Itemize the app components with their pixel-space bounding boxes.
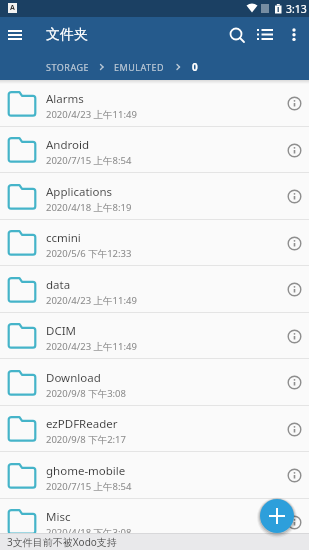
button[interactable]	[287, 422, 302, 437]
staticText: Applications	[46, 184, 113, 200]
button[interactable]: ghome-mobile	[0, 452, 309, 499]
staticText: 2020/4/18 下午3:08	[46, 526, 132, 539]
button[interactable]: Misc	[0, 499, 309, 545]
staticText: 3文件目前不被Xodo支持	[7, 535, 117, 549]
button[interactable]	[287, 468, 302, 483]
button[interactable]	[287, 189, 302, 204]
staticText: 2020/4/23 上午11:49	[46, 340, 137, 353]
staticText: Android	[46, 137, 90, 153]
staticText: DCIM	[46, 323, 76, 339]
button[interactable]	[224, 22, 250, 48]
staticText: ghome-mobile	[46, 463, 126, 479]
button[interactable]	[287, 329, 302, 344]
button[interactable]	[282, 23, 306, 47]
button[interactable]	[252, 22, 278, 48]
staticText: 2020/4/23 上午11:49	[46, 294, 137, 307]
staticText: Alarms	[46, 91, 84, 107]
button[interactable]: 0	[192, 60, 198, 74]
button[interactable]	[287, 236, 302, 251]
button[interactable]: EMULATED	[114, 61, 165, 73]
staticText: data	[46, 277, 71, 293]
staticText: 文件夹	[46, 26, 88, 44]
staticText: 2020/4/23 上午11:49	[46, 108, 137, 121]
button[interactable]	[287, 143, 302, 158]
button[interactable]	[287, 375, 302, 390]
staticText: ccmini	[46, 230, 81, 246]
button[interactable]	[287, 96, 302, 111]
button[interactable]: ezPDFReader	[0, 406, 309, 452]
button[interactable]	[260, 499, 294, 533]
staticText: 2020/7/15 上午8:54	[46, 480, 132, 493]
staticText: 2020/9/8 下午3:08	[46, 387, 126, 400]
staticText: Download	[46, 370, 101, 386]
button[interactable]: DCIM	[0, 313, 309, 359]
staticText: 2020/7/15 上午8:54	[46, 154, 132, 167]
staticText: 2020/9/8 下午2:17	[46, 433, 126, 446]
staticText: A	[10, 3, 15, 13]
button[interactable]: Alarms	[0, 80, 309, 127]
button[interactable]	[287, 282, 302, 297]
button[interactable]: data	[0, 266, 309, 313]
button[interactable]: Download	[0, 359, 309, 406]
staticText: Misc	[46, 509, 71, 525]
staticText: 3:13	[286, 2, 307, 16]
staticText: 2020/4/18 上午8:19	[46, 201, 132, 214]
staticText: 2020/5/6 下午12:33	[46, 247, 132, 260]
button[interactable]: Applications	[0, 173, 309, 220]
button[interactable]: STORAGE	[46, 61, 90, 73]
button[interactable]: ccmini	[0, 220, 309, 266]
staticText: ezPDFReader	[46, 416, 118, 432]
button[interactable]	[4, 24, 26, 46]
button[interactable]	[287, 515, 302, 530]
button[interactable]: Android	[0, 127, 309, 173]
